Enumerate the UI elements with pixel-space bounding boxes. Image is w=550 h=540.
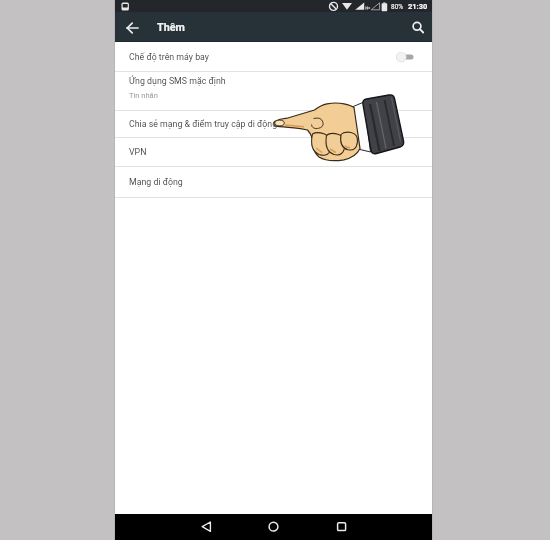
- button[interactable]: Chế độ trên máy bay: [115, 43, 432, 71]
- button[interactable]: VPN: [115, 138, 432, 166]
- staticText: Chia sẻ mạng & điểm truy cập di động: [129, 119, 278, 129]
- button[interactable]: [331, 516, 352, 537]
- staticText: Ứng dụng SMS mặc định: [129, 76, 226, 86]
- button[interactable]: [263, 516, 284, 537]
- button[interactable]: Ứng dụng SMS mặc định: [115, 72, 432, 110]
- staticText: Tin nhắn: [129, 91, 158, 100]
- button[interactable]: [123, 17, 143, 37]
- staticText: 21:30: [408, 2, 428, 11]
- button[interactable]: [196, 516, 217, 537]
- staticText: Chế độ trên máy bay: [129, 52, 209, 62]
- button[interactable]: Mạng di động: [115, 167, 432, 197]
- staticText: VPN: [129, 147, 147, 157]
- staticText: Mạng di động: [129, 177, 183, 187]
- staticText: Thêm: [157, 21, 185, 34]
- staticText: 80%: [391, 3, 404, 11]
- button[interactable]: Chia sẻ mạng & điểm truy cập di động: [115, 111, 432, 137]
- button[interactable]: [408, 17, 429, 38]
